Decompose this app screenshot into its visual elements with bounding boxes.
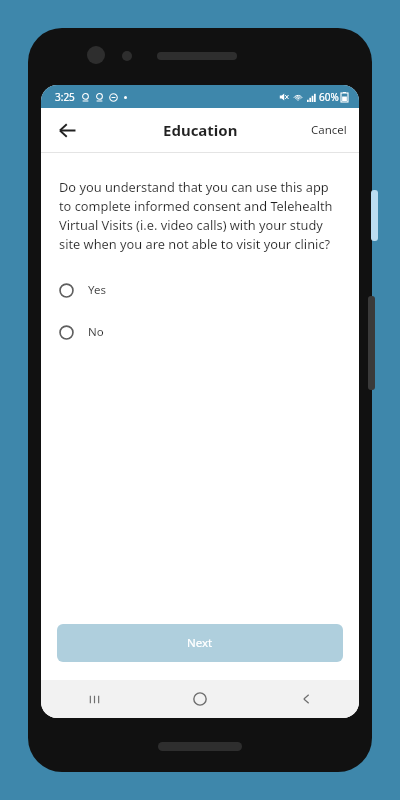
button[interactable]: Back bbox=[253, 680, 359, 718]
staticText: Next bbox=[187, 635, 213, 651]
staticText: Yes bbox=[88, 282, 106, 298]
staticText: Education bbox=[163, 120, 238, 140]
button[interactable]: No bbox=[41, 320, 359, 344]
button[interactable]: Cancel bbox=[303, 116, 355, 144]
staticText: 3:25 bbox=[55, 90, 75, 104]
button[interactable]: Back bbox=[49, 112, 85, 148]
button[interactable]: Next bbox=[57, 624, 343, 662]
staticText: 60% bbox=[319, 90, 339, 104]
staticText: Do you understand that you can use this … bbox=[59, 178, 343, 253]
staticText: Cancel bbox=[311, 122, 347, 138]
button[interactable]: Recent apps bbox=[41, 680, 147, 718]
button[interactable]: Home bbox=[147, 680, 253, 718]
staticText: No bbox=[88, 324, 104, 340]
button[interactable]: Yes bbox=[41, 278, 359, 302]
